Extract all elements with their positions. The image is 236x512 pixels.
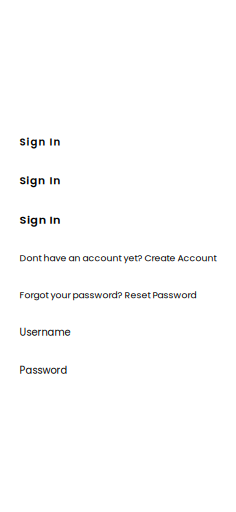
staticText: Dont have an account yet? Create Account: [19, 252, 216, 265]
staticText: Forgot your password? Reset Password: [19, 289, 196, 301]
staticText: Username: [19, 325, 70, 339]
staticText: Sign In: [19, 212, 60, 228]
staticText: Sign In: [19, 173, 60, 188]
staticText: Sign In: [19, 135, 60, 149]
staticText: Password: [19, 363, 67, 377]
